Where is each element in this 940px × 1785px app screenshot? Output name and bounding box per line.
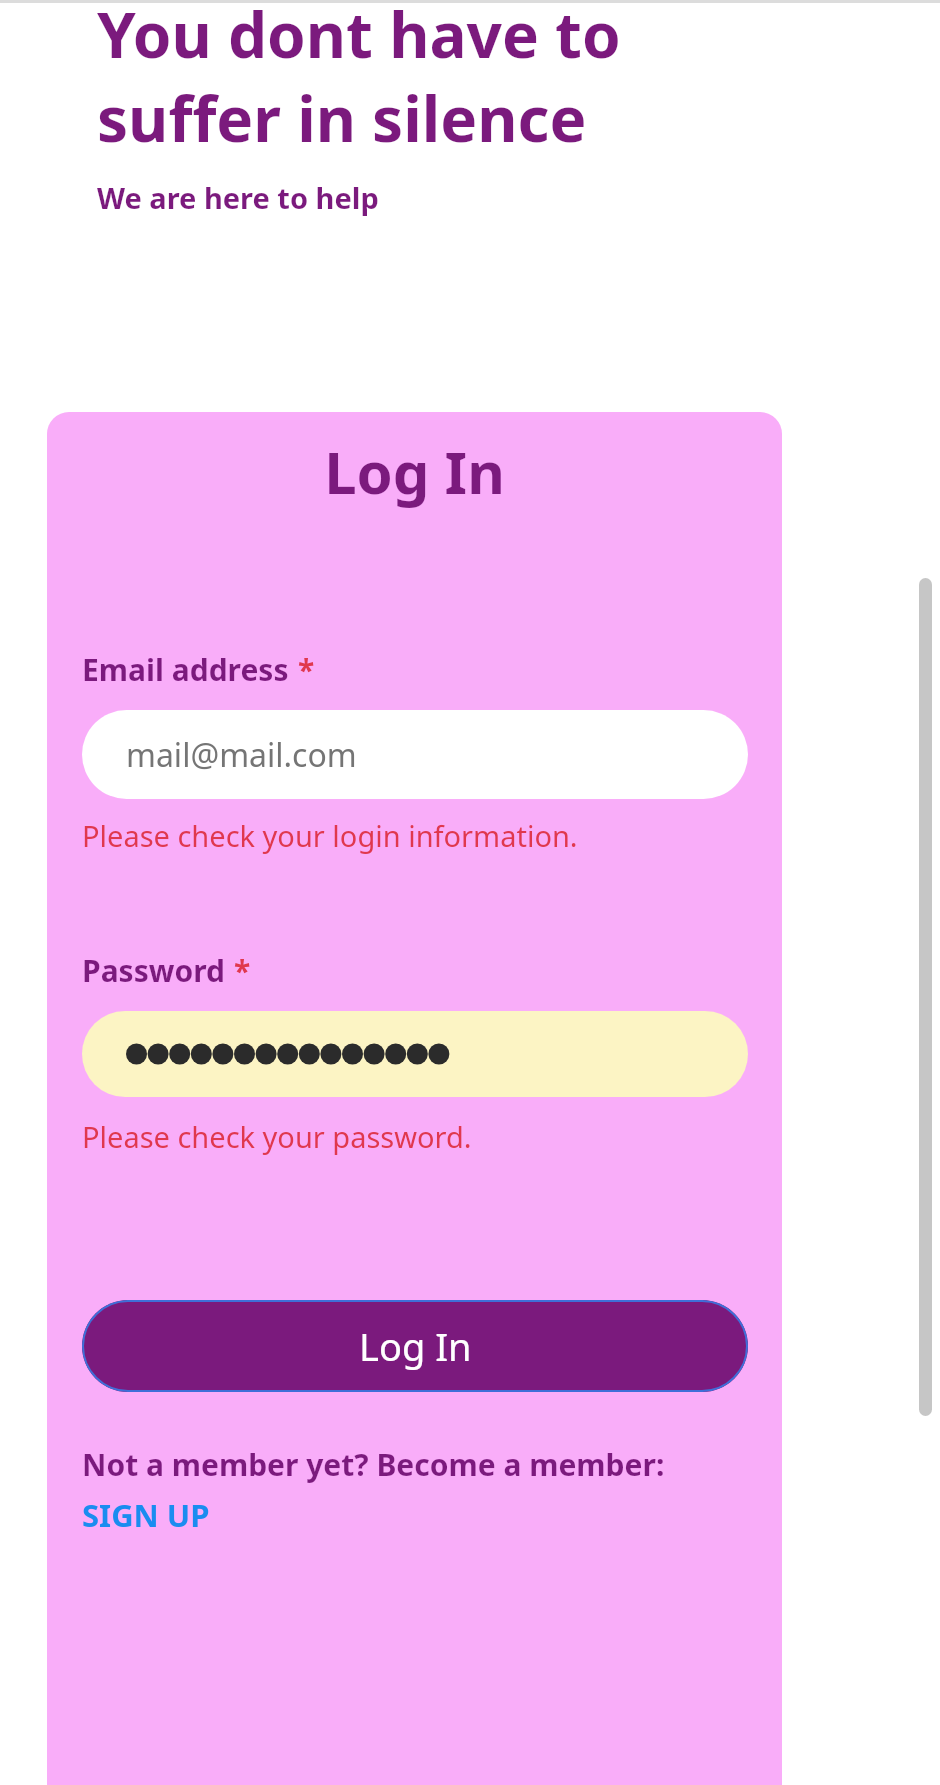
staticText: SIGN UP	[82, 1494, 210, 1536]
other: Scrollbar	[919, 578, 932, 1416]
staticText: Log In	[47, 432, 782, 511]
staticText: Email address	[82, 649, 289, 690]
button[interactable]: mail@mail.com	[82, 710, 748, 799]
button[interactable]	[82, 1011, 748, 1097]
staticText: Please check your password.	[82, 1117, 472, 1156]
staticText: suffer in silence	[97, 76, 587, 160]
staticText: Please check your login information.	[82, 816, 578, 855]
staticText: *	[298, 649, 315, 690]
staticText: Not a member yet? Become a member:	[82, 1444, 665, 1485]
staticText: Password	[82, 950, 225, 991]
button[interactable]: Log In	[82, 1300, 748, 1392]
staticText: Log In	[359, 1320, 472, 1372]
button[interactable]: SIGN UP	[82, 1494, 210, 1536]
staticText: *	[234, 950, 251, 991]
staticText: mail@mail.com	[126, 733, 357, 777]
staticText: You dont have to	[97, 0, 621, 76]
staticText: We are here to help	[97, 178, 379, 217]
